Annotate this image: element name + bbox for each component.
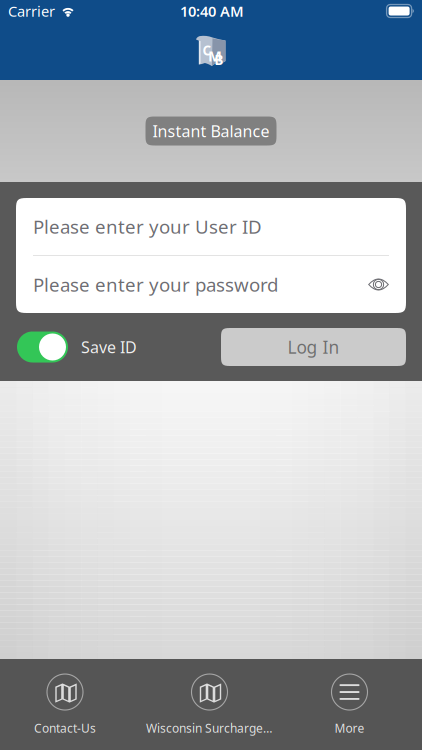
button[interactable]: Contact-Us [0, 673, 130, 736]
staticText: Log In [287, 335, 339, 358]
button[interactable]: Save ID [17, 331, 137, 362]
staticText: Carrier [8, 1, 55, 21]
staticText: B [214, 51, 223, 69]
staticText: Save ID [81, 336, 137, 358]
staticText: C [202, 41, 211, 59]
staticText: Please enter your User ID [33, 214, 262, 239]
button[interactable]: Instant Balance [145, 116, 276, 145]
staticText: 10:40 AM [180, 1, 244, 21]
staticText: Please enter your password [33, 272, 278, 297]
staticText: More [334, 720, 364, 736]
button[interactable]: Show password [368, 267, 389, 301]
staticText: M [208, 46, 222, 65]
button[interactable]: Wisconsin Surcharge-Free ATMs [129, 673, 289, 736]
button[interactable]: Log In [221, 328, 406, 366]
staticText: Wisconsin Surcharge-Free ATMs [146, 720, 273, 736]
staticText: Instant Balance [152, 120, 269, 142]
button[interactable]: More [283, 673, 415, 736]
staticText: Contact-Us [34, 720, 96, 736]
